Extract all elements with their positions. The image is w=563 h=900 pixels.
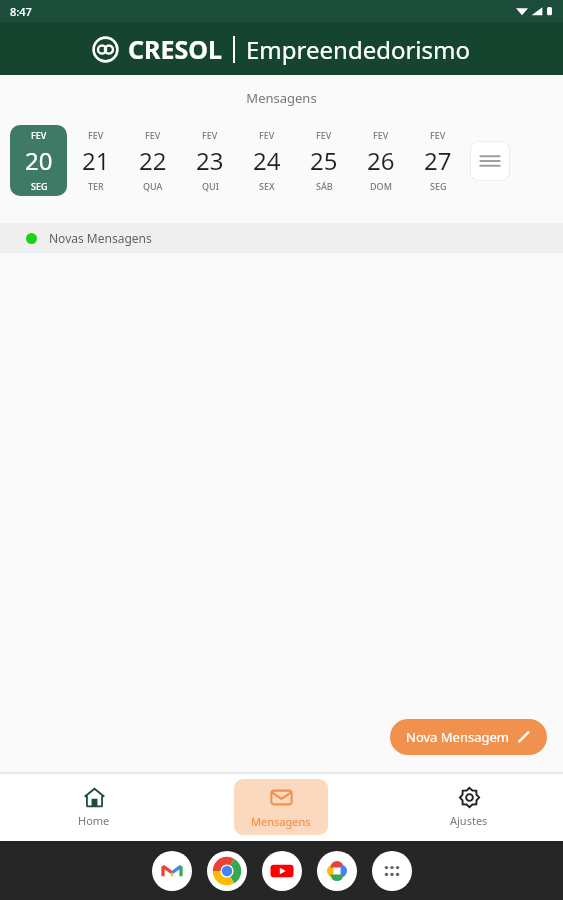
- staticText: FEV: [88, 129, 104, 141]
- staticText: FEV: [430, 129, 446, 141]
- button[interactable]: FEV: [409, 125, 466, 196]
- button[interactable]: App: [317, 851, 357, 891]
- button[interactable]: App: [372, 851, 412, 891]
- staticText: 8:47: [10, 4, 32, 19]
- button[interactable]: FEV: [352, 125, 409, 196]
- button[interactable]: FEV: [238, 125, 295, 196]
- button[interactable]: App: [152, 851, 192, 891]
- staticText: 21: [82, 144, 110, 177]
- button[interactable]: FEV: [67, 125, 124, 196]
- button[interactable]: App: [262, 851, 302, 891]
- button[interactable]: Home: [47, 779, 141, 835]
- staticText: QUA: [143, 180, 163, 192]
- staticText: FEV: [316, 129, 332, 141]
- staticText: 24: [253, 144, 281, 177]
- button[interactable]: Menu: [470, 141, 510, 181]
- staticText: FEV: [31, 129, 47, 141]
- staticText: DOM: [370, 180, 392, 192]
- staticText: FEV: [259, 129, 275, 141]
- staticText: Novas Mensagens: [49, 230, 152, 246]
- staticText: SÁB: [316, 180, 333, 192]
- staticText: Mensagens: [0, 89, 563, 107]
- button[interactable]: Ajustes: [422, 779, 516, 835]
- staticText: 22: [139, 144, 167, 177]
- staticText: Empreendedorismo: [246, 33, 471, 66]
- staticText: FEV: [373, 129, 389, 141]
- button[interactable]: FEV: [181, 125, 238, 196]
- staticText: QUI: [202, 180, 219, 192]
- button[interactable]: Mensagens: [234, 779, 328, 835]
- staticText: 26: [367, 144, 395, 177]
- staticText: Ajustes: [450, 813, 488, 828]
- staticText: Nova Mensagem: [406, 728, 509, 746]
- staticText: Home: [78, 813, 110, 828]
- button[interactable]: FEV: [295, 125, 352, 196]
- staticText: FEV: [145, 129, 161, 141]
- staticText: Mensagens: [251, 814, 311, 829]
- button[interactable]: Nova Mensagem: [390, 719, 547, 755]
- button[interactable]: App: [207, 851, 247, 891]
- button[interactable]: Novas Mensagens: [0, 223, 563, 253]
- staticText: SEG: [430, 180, 447, 192]
- staticText: TER: [88, 180, 104, 192]
- button[interactable]: FEV: [124, 125, 181, 196]
- staticText: CRESOL: [128, 32, 222, 66]
- staticText: SEX: [259, 180, 275, 192]
- staticText: SEG: [31, 180, 48, 192]
- staticText: FEV: [202, 129, 218, 141]
- button[interactable]: FEV: [10, 125, 67, 196]
- staticText: 23: [196, 144, 224, 177]
- staticText: 20: [25, 144, 53, 177]
- staticText: 27: [424, 144, 452, 177]
- staticText: 25: [310, 144, 338, 177]
